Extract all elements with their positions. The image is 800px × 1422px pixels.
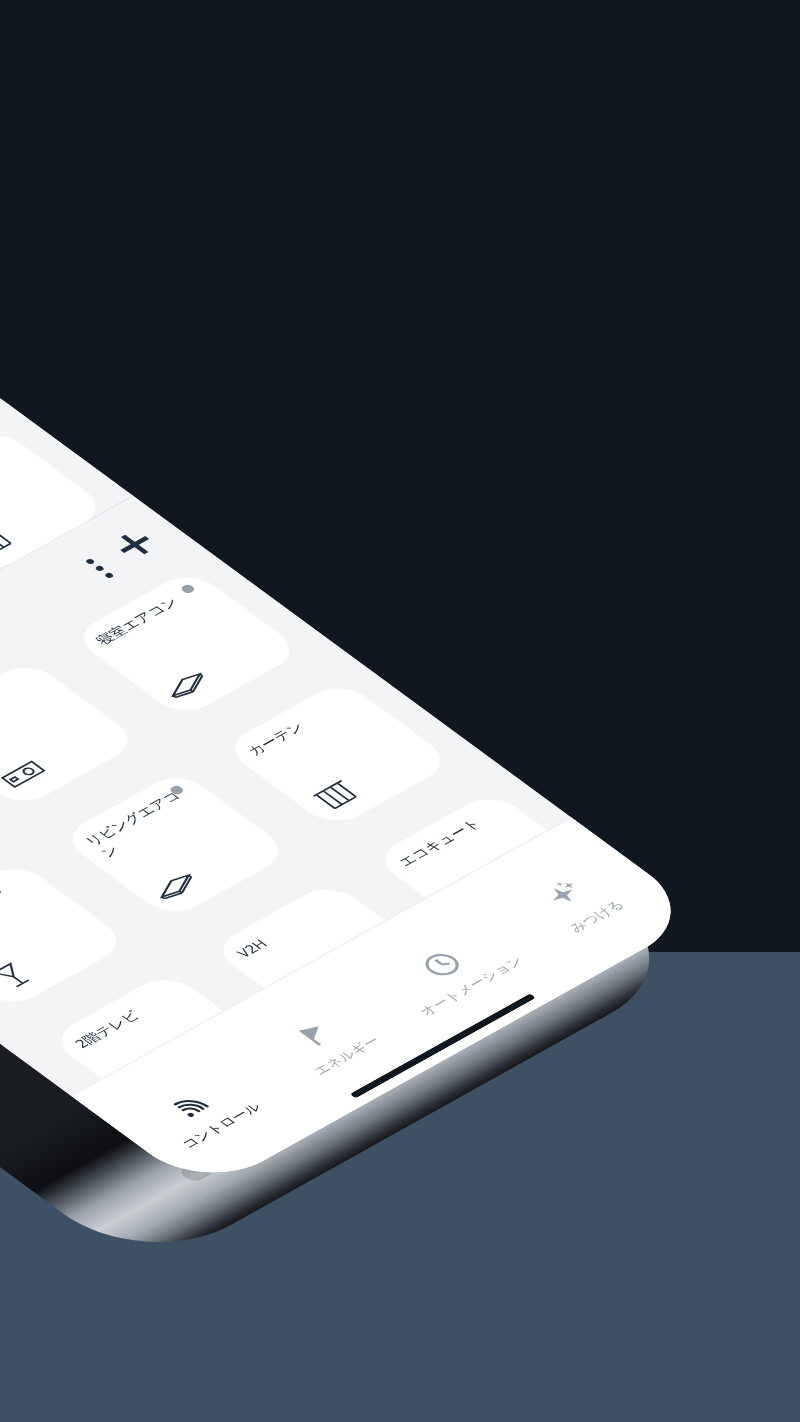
button[interactable]: 寝室エアコン	[69, 568, 304, 719]
button[interactable]: Add	[85, 513, 184, 576]
staticText: 寝室エアコン	[92, 586, 198, 648]
button[interactable]: 洗面所	[0, 426, 110, 576]
button[interactable]: 2階テレビ	[47, 971, 282, 1121]
staticText: オートメーション	[415, 954, 528, 1019]
staticText: リビングエアコン	[81, 787, 203, 860]
button[interactable]: リビングエアコン	[58, 770, 293, 920]
button[interactable]: オートメーション	[321, 886, 579, 1054]
button[interactable]: エコキュート	[371, 790, 606, 941]
button[interactable]: エネルギー	[196, 956, 454, 1124]
staticText: コントロール	[177, 1100, 265, 1151]
button[interactable]: コントロール	[70, 1026, 329, 1194]
button[interactable]: カーテン	[220, 679, 455, 830]
button[interactable]: Nebula	[0, 659, 142, 809]
button[interactable]: V2H	[209, 880, 444, 1031]
button[interactable]: ワインセラー	[0, 860, 131, 1011]
staticText: ワインセラー	[0, 877, 25, 939]
staticText: カーテン	[243, 697, 349, 758]
button[interactable]: みつける	[446, 817, 705, 985]
staticText: エネルギー	[309, 1033, 384, 1078]
staticText: V2H	[232, 898, 339, 961]
staticText: エコキュート	[394, 807, 500, 869]
button[interactable]: More options	[47, 534, 145, 597]
staticText: みつける	[565, 897, 629, 935]
staticText: 2階テレビ	[70, 988, 177, 1051]
